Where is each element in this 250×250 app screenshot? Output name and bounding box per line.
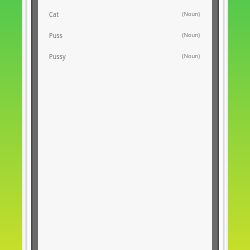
button[interactable]: Pussy: [49, 50, 200, 61]
staticText: (Noun): [182, 52, 200, 60]
staticText: (Noun): [182, 31, 200, 39]
staticText: (Noun): [182, 10, 200, 18]
staticText: Cat: [49, 10, 59, 18]
staticText: Pussy: [49, 52, 66, 60]
button[interactable]: Cat: [49, 8, 200, 19]
staticText: Puss: [49, 31, 63, 39]
button[interactable]: Puss: [49, 29, 200, 40]
